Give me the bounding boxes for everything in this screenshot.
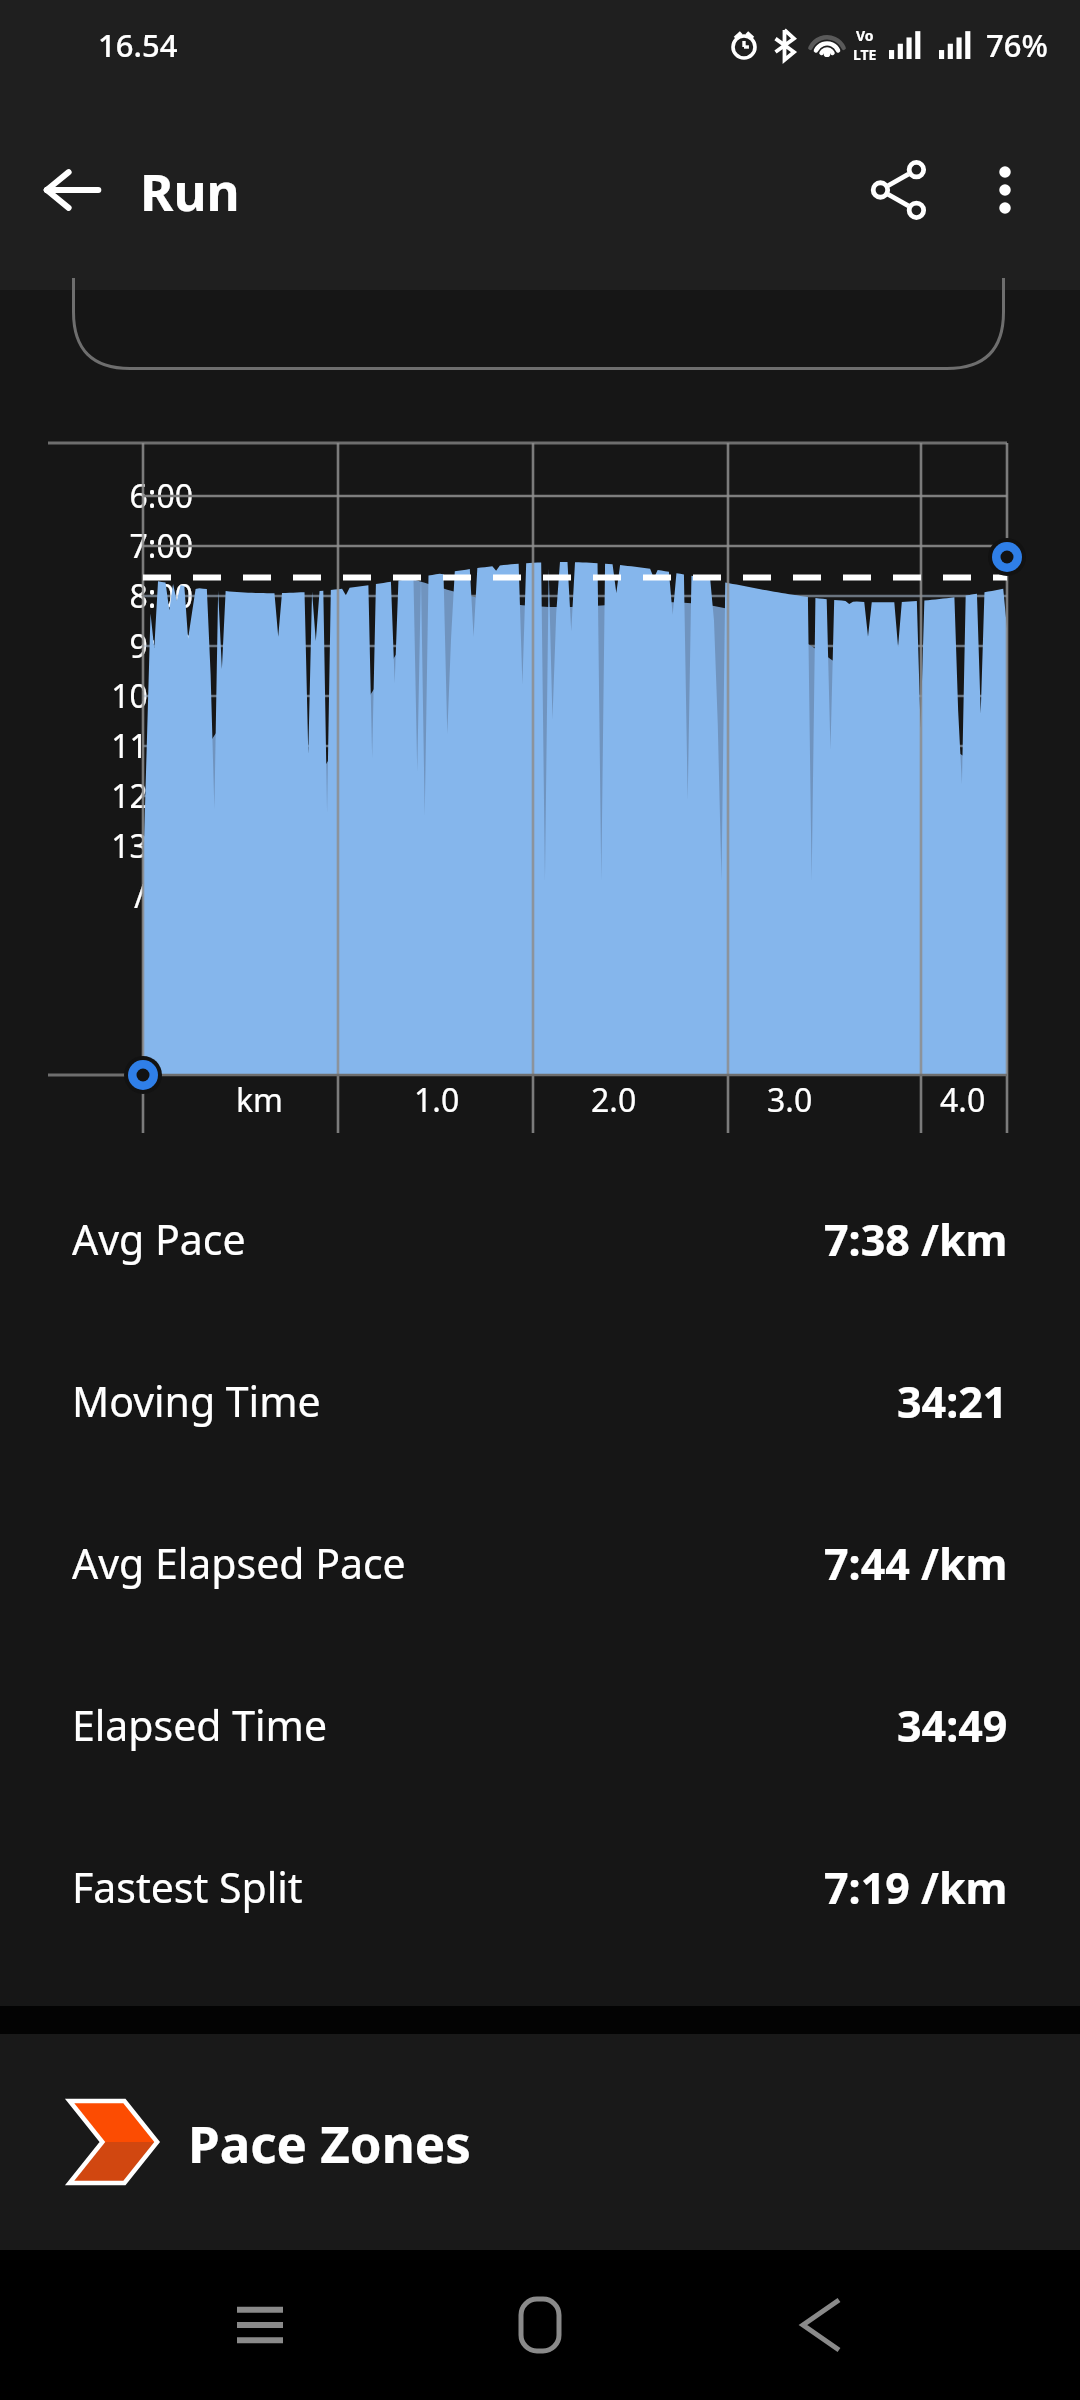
staticText: Elapsed Time [72, 1697, 328, 1753]
staticText: LTE [853, 45, 877, 64]
button[interactable]: Moving Time [0, 1320, 1080, 1482]
staticText: Run [140, 156, 240, 225]
staticText: Vo [856, 26, 874, 45]
button[interactable]: Avg Pace [0, 1158, 1080, 1320]
button[interactable]: Back [22, 140, 122, 240]
button[interactable]: Back [755, 2260, 885, 2390]
staticText: 10:00 [111, 674, 193, 718]
button[interactable]: Share [846, 137, 952, 243]
staticText: 76% [986, 24, 1048, 66]
staticText: 1.0 [414, 1078, 460, 1122]
staticText: 11:00 [111, 724, 193, 768]
button[interactable]: More options [952, 137, 1058, 243]
staticText: 8:00 [129, 574, 193, 618]
staticText: 34:21 [897, 1372, 1008, 1431]
button[interactable]: Pace Zones [0, 2034, 1080, 2250]
button[interactable]: Recent apps [195, 2260, 325, 2390]
staticText: 16.54 [98, 24, 178, 66]
staticText: 9:00 [129, 624, 193, 668]
staticText: km [236, 1078, 284, 1122]
staticText: 2.0 [591, 1078, 637, 1122]
staticText: 12:00 [111, 774, 193, 818]
staticText: 7:38 /km [824, 1210, 1008, 1269]
button[interactable]: Elapsed Time [0, 1644, 1080, 1806]
staticText: Avg Elapsed Pace [72, 1535, 406, 1591]
staticText: Avg Pace [72, 1211, 246, 1267]
staticText: 13:00 [111, 824, 193, 868]
staticText: 7:19 /km [824, 1858, 1008, 1917]
staticText: /km [134, 874, 193, 918]
button[interactable]: Home [475, 2260, 605, 2390]
staticText: 3.0 [767, 1078, 813, 1122]
staticText: 7:00 [129, 524, 193, 568]
staticText: Moving Time [72, 1373, 321, 1429]
button[interactable]: Fastest Split [0, 1806, 1080, 1968]
staticText: 34:49 [897, 1696, 1008, 1755]
staticText: Fastest Split [72, 1859, 303, 1915]
staticText: 7:44 /km [824, 1534, 1008, 1593]
button[interactable]: Avg Elapsed Pace [0, 1482, 1080, 1644]
staticText: Pace Zones [188, 2108, 471, 2177]
staticText: 6:00 [129, 474, 193, 518]
staticText: 4.0 [940, 1078, 986, 1122]
